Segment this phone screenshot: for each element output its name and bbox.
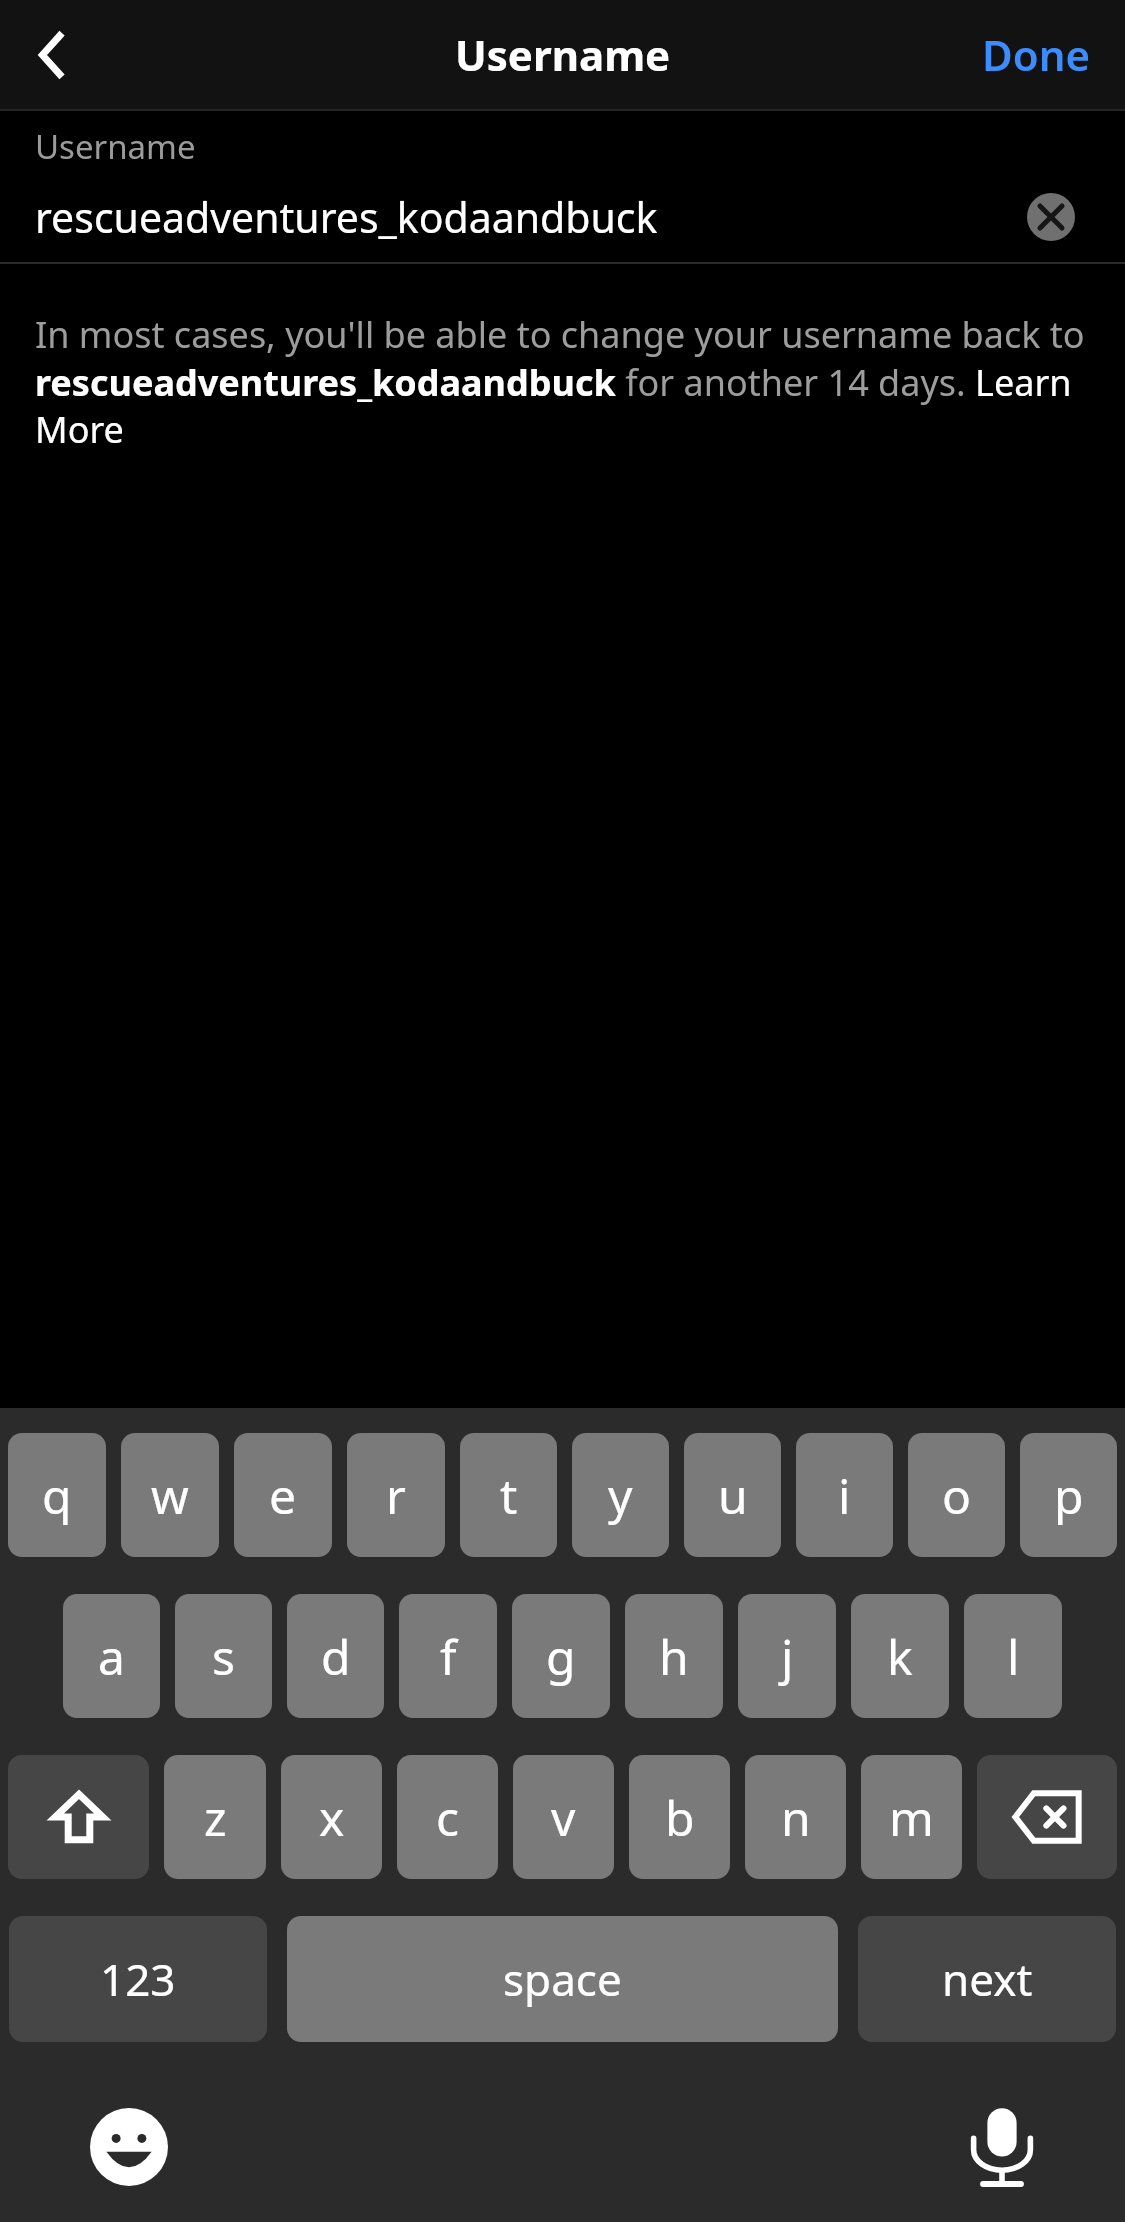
staticText: c <box>436 1785 460 1850</box>
staticText: u <box>718 1463 748 1528</box>
staticText: b <box>665 1785 695 1850</box>
staticText: t <box>500 1463 518 1528</box>
staticText: l <box>1007 1624 1020 1689</box>
button[interactable]: next <box>858 1916 1116 2042</box>
button[interactable]: Emoji <box>84 2102 174 2192</box>
button[interactable]: v <box>513 1755 614 1879</box>
button[interactable]: u <box>684 1433 781 1557</box>
button[interactable]: k <box>851 1594 949 1718</box>
button[interactable]: q <box>8 1433 106 1557</box>
staticText: r <box>386 1463 406 1528</box>
button[interactable]: x <box>281 1755 382 1879</box>
staticText: d <box>321 1624 351 1689</box>
button[interactable]: f <box>399 1594 497 1718</box>
button[interactable]: c <box>397 1755 498 1879</box>
staticText: k <box>887 1624 913 1689</box>
button[interactable]: t <box>460 1433 557 1557</box>
button[interactable]: g <box>512 1594 610 1718</box>
button[interactable]: 123 <box>9 1916 267 2042</box>
staticText: m <box>889 1785 934 1850</box>
button[interactable]: r <box>347 1433 445 1557</box>
staticText: a <box>98 1624 125 1689</box>
staticText: h <box>659 1624 689 1689</box>
button[interactable]: Voice input <box>957 2102 1047 2192</box>
staticText: next <box>942 1949 1033 2009</box>
staticText: z <box>204 1785 227 1850</box>
button[interactable]: Done <box>948 4 1125 105</box>
staticText: q <box>42 1463 72 1528</box>
staticText: j <box>781 1624 794 1689</box>
staticText: i <box>838 1463 851 1528</box>
staticText: In most cases, you'll be able to change … <box>35 310 1085 453</box>
staticText: Done <box>982 26 1091 83</box>
button[interactable]: o <box>908 1433 1005 1557</box>
button[interactable]: j <box>738 1594 836 1718</box>
button[interactable]: Shift <box>8 1755 149 1879</box>
staticText: Username <box>455 26 671 83</box>
staticText: w <box>151 1463 189 1528</box>
button[interactable]: Back <box>8 11 96 99</box>
button[interactable]: Clear text <box>1015 182 1087 252</box>
staticText: space <box>503 1949 622 2009</box>
button[interactable]: In most cases, you'll be able to change … <box>35 310 1085 453</box>
staticText: g <box>546 1624 576 1689</box>
button[interactable]: h <box>625 1594 723 1718</box>
staticText: Username <box>35 124 196 169</box>
staticText: f <box>440 1624 457 1689</box>
staticText: o <box>942 1463 972 1528</box>
button[interactable]: n <box>745 1755 846 1879</box>
button[interactable]: s <box>175 1594 272 1718</box>
button[interactable]: w <box>121 1433 219 1557</box>
button[interactable]: l <box>964 1594 1062 1718</box>
staticText: p <box>1054 1463 1084 1528</box>
button[interactable]: p <box>1020 1433 1117 1557</box>
staticText: n <box>781 1785 811 1850</box>
staticText: rescueadventures_kodaandbuck <box>35 189 1015 245</box>
staticText: e <box>269 1463 297 1528</box>
button[interactable]: b <box>629 1755 730 1879</box>
button[interactable]: z <box>164 1755 266 1879</box>
button[interactable]: Backspace <box>977 1755 1117 1879</box>
button[interactable]: a <box>63 1594 160 1718</box>
button[interactable]: i <box>796 1433 893 1557</box>
staticText: x <box>319 1785 345 1850</box>
button[interactable]: m <box>861 1755 962 1879</box>
staticText: v <box>551 1785 576 1850</box>
button[interactable]: y <box>572 1433 669 1557</box>
staticText: s <box>212 1624 235 1689</box>
button[interactable]: d <box>287 1594 384 1718</box>
button[interactable]: space <box>287 1916 838 2042</box>
button[interactable]: e <box>234 1433 332 1557</box>
staticText: y <box>608 1463 633 1528</box>
staticText: 123 <box>100 1949 176 2009</box>
